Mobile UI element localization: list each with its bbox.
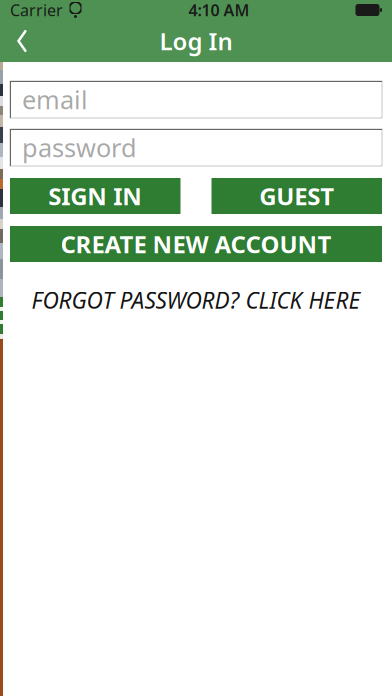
button[interactable]: FORGOT PASSWORD? CLICK HERE (10, 279, 382, 321)
staticText: password (22, 131, 137, 164)
staticText: GUEST (259, 180, 334, 212)
button[interactable]: password (10, 129, 382, 166)
staticText: SIGN IN (48, 180, 142, 212)
button[interactable]: Back (0, 20, 44, 62)
staticText: CREATE NEW ACCOUNT (60, 228, 331, 260)
button[interactable]: email (10, 81, 382, 118)
button[interactable]: GUEST (211, 178, 382, 214)
button[interactable]: SIGN IN (10, 178, 180, 214)
staticText: Log In (159, 25, 232, 57)
button[interactable]: CREATE NEW ACCOUNT (10, 226, 382, 262)
staticText: Carrier (10, 0, 63, 21)
staticText: email (22, 83, 88, 116)
staticText: 4:10 AM (188, 0, 249, 21)
staticText: FORGOT PASSWORD? CLICK HERE (31, 285, 360, 315)
